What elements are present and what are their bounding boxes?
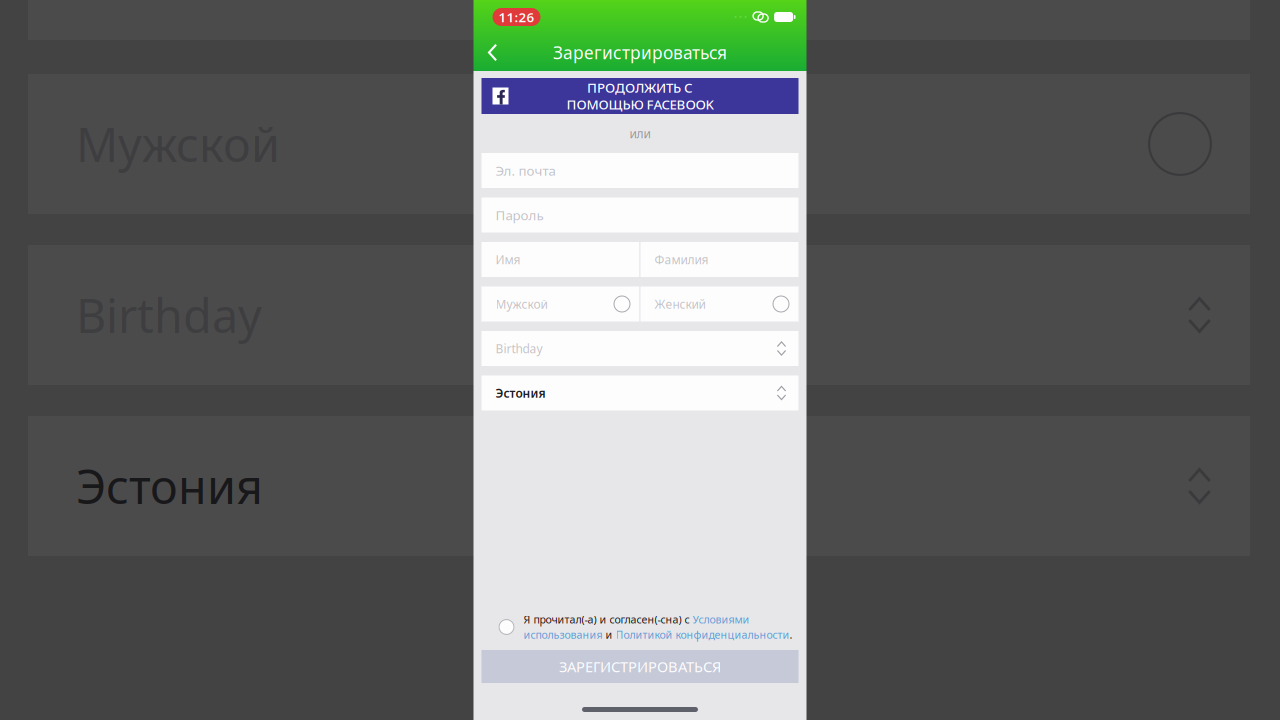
staticText: 11:26 — [498, 8, 534, 26]
button[interactable]: Фамилия — [640, 242, 798, 277]
button[interactable]: Back — [473, 34, 511, 71]
staticText: Birthday — [495, 340, 542, 356]
staticText: Эстония — [495, 385, 545, 401]
staticText: использования и Политикой конфиденциальн… — [523, 627, 792, 642]
button[interactable]: Женский — [640, 286, 798, 321]
staticText: Имя — [495, 251, 520, 267]
button[interactable]: Эл. почта — [481, 153, 798, 188]
button[interactable]: Имя — [481, 242, 639, 277]
button[interactable]: ЗАРЕГИСТРИРОВАТЬСЯ — [481, 650, 798, 683]
staticText: Женский — [654, 296, 705, 312]
staticText: • • • — [734, 12, 747, 22]
staticText: ПРОДОЛЖИТЬ С — [587, 79, 693, 96]
staticText: Фамилия — [654, 251, 708, 267]
staticText: или — [629, 125, 650, 141]
staticText: Эстония — [76, 455, 263, 517]
button[interactable]: Мужской — [481, 286, 639, 321]
staticText: Мужской — [495, 296, 547, 312]
button[interactable]: Эстония — [481, 375, 798, 410]
staticText: Я прочитал(-а) и согласен(-сна) с Услови… — [523, 612, 749, 626]
staticText: Эл. почта — [495, 162, 555, 179]
staticText: Birthday — [76, 284, 262, 346]
staticText: Пароль — [495, 206, 543, 224]
button[interactable]: Я прочитал(-а) и согласен(-сна) с Услови… — [473, 609, 806, 645]
staticText: ПОМОЩЬЮ FACEBOOK — [566, 95, 713, 113]
button[interactable]: Пароль — [481, 197, 798, 232]
staticText: Мужской — [76, 113, 280, 175]
button[interactable]: ПРОДОЛЖИТЬ С — [481, 78, 798, 114]
staticText: Зарегистрироваться — [553, 41, 727, 64]
staticText: ЗАРЕГИСТРИРОВАТЬСЯ — [559, 657, 721, 676]
button[interactable]: Birthday — [481, 331, 798, 366]
